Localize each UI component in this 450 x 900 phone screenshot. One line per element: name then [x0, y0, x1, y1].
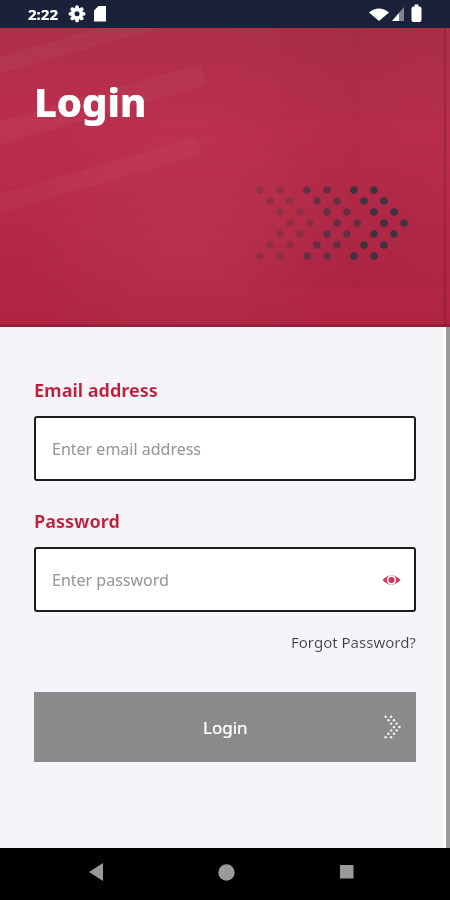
button[interactable]: Login — [34, 692, 416, 762]
button[interactable] — [323, 848, 371, 896]
staticText: Enter email address — [52, 438, 202, 460]
staticText: Login — [203, 716, 248, 739]
button[interactable] — [378, 567, 404, 593]
staticText: Login — [34, 74, 147, 128]
button[interactable] — [202, 848, 250, 896]
button[interactable]: Enter email address — [34, 416, 416, 481]
staticText: Forgot Password? — [291, 632, 416, 652]
button[interactable]: Enter password — [34, 547, 416, 612]
staticText: Enter password — [52, 569, 169, 591]
button[interactable] — [72, 848, 120, 896]
staticText: Password — [34, 509, 120, 534]
staticText: Email address — [34, 378, 158, 403]
staticText: 2:22 — [28, 4, 58, 24]
button[interactable]: Forgot Password? — [291, 632, 416, 652]
